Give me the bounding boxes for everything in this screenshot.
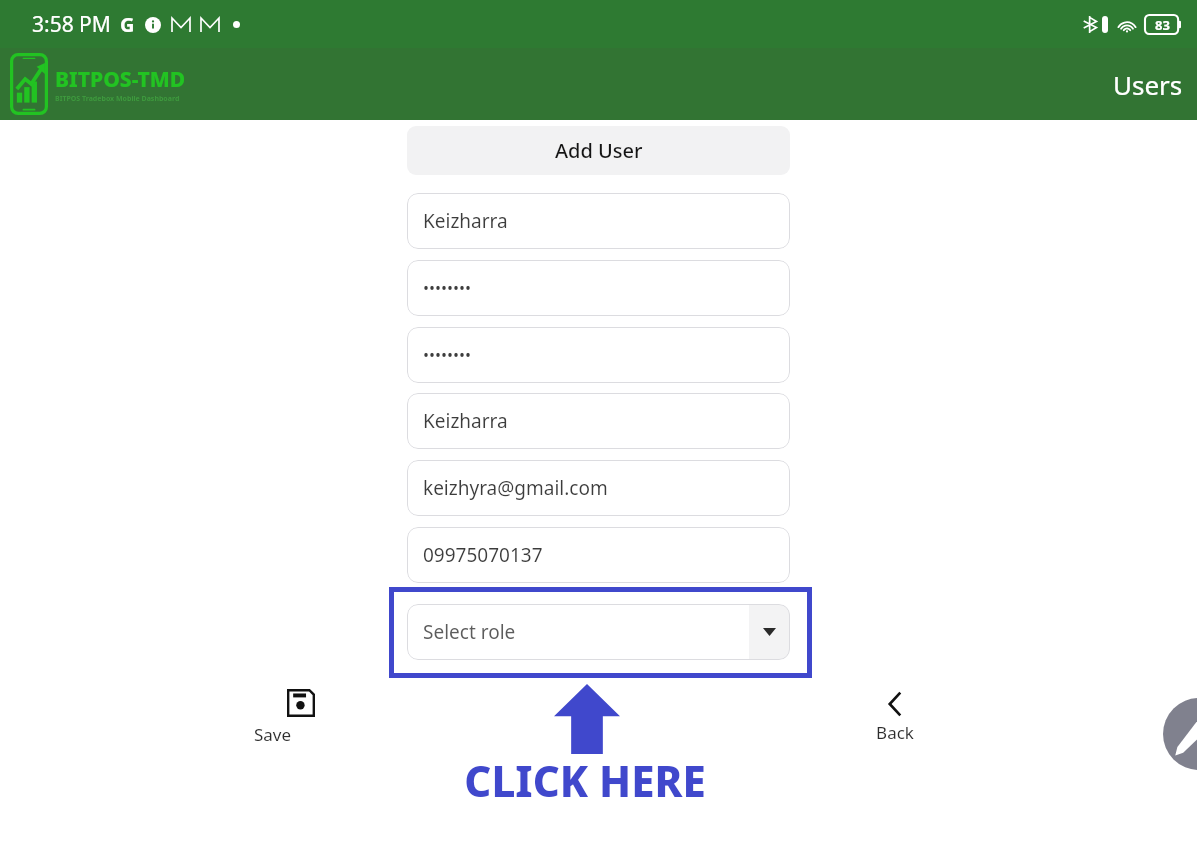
staticText: Keizharra: [423, 208, 508, 234]
staticText: 83: [1155, 16, 1170, 34]
button[interactable]: Keizharra: [407, 193, 790, 249]
staticText: BITPOS-TMD: [55, 65, 186, 94]
staticText: Back: [848, 721, 942, 744]
button[interactable]: Add User: [407, 126, 790, 175]
button[interactable]: Save: [254, 689, 348, 746]
button[interactable]: Select role: [407, 604, 790, 660]
staticText: Users: [1113, 67, 1183, 102]
button[interactable]: 09975070137: [407, 527, 790, 583]
staticText: BITPOS Tradebox Mobile Dashboard: [55, 94, 180, 104]
staticText: Add User: [555, 137, 643, 164]
button[interactable]: Back: [848, 689, 942, 744]
staticText: ••••••••: [423, 277, 472, 299]
staticText: Select role: [423, 619, 516, 645]
button[interactable]: ••••••••: [407, 327, 790, 383]
staticText: 3:58 PM: [32, 10, 111, 39]
button[interactable]: Keizharra: [407, 393, 790, 449]
staticText: Save: [254, 723, 348, 746]
staticText: G: [120, 11, 135, 38]
button[interactable]: keizhyra@gmail.com: [407, 460, 790, 516]
staticText: CLICK HERE: [385, 752, 785, 809]
button[interactable]: Edit floating button: [1163, 698, 1197, 770]
staticText: Keizharra: [423, 408, 508, 434]
button[interactable]: ••••••••: [407, 260, 790, 316]
staticText: ••••••••: [423, 344, 472, 366]
staticText: 09975070137: [423, 542, 543, 568]
staticText: keizhyra@gmail.com: [423, 475, 608, 501]
